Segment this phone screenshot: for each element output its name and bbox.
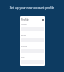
staticText: Email [21,34,27,37]
staticText: Set up your new account profile [0,6,64,10]
staticText: Phone [21,45,28,48]
staticText: Name [21,23,27,26]
staticText: City [21,56,25,59]
staticText: Profile [21,18,29,21]
